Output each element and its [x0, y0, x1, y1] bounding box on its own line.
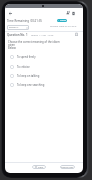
staticText: To keep one searching [17, 83, 45, 87]
button[interactable]: To criticise [10, 62, 68, 71]
staticText: Pause [60, 19, 66, 22]
staticText: Section A [9, 26, 19, 29]
button[interactable]: Clear [32, 165, 46, 169]
button[interactable]: Section A [7, 25, 29, 30]
button[interactable]: Back [6, 9, 14, 17]
staticText: To keep on talking [17, 74, 40, 78]
staticText: Clear [38, 166, 44, 169]
button[interactable]: To spend freely [10, 52, 68, 61]
staticText: To spend freely [17, 55, 36, 59]
button[interactable]: Menu [69, 9, 77, 17]
button[interactable]: To keep on talking [10, 71, 68, 80]
button[interactable]: Bookmark question [73, 31, 80, 38]
staticText: To criticise [17, 65, 30, 69]
staticText: Choose the correct meaning of the idiom … [8, 40, 64, 50]
button[interactable]: Pause [57, 19, 67, 22]
button[interactable]: To keep one searching [10, 80, 68, 89]
button[interactable]: Save & Next [60, 165, 75, 169]
staticText: Section Time 01:01:44.5 [50, 24, 77, 27]
staticText: Time Remaining 00:21:35 [7, 19, 43, 23]
staticText: Marks + 1.00 - 0.25 [31, 33, 54, 36]
staticText: Save & Next [61, 166, 74, 169]
staticText: Question No. 1 [7, 33, 28, 37]
button[interactable]: Profile [64, 9, 72, 17]
